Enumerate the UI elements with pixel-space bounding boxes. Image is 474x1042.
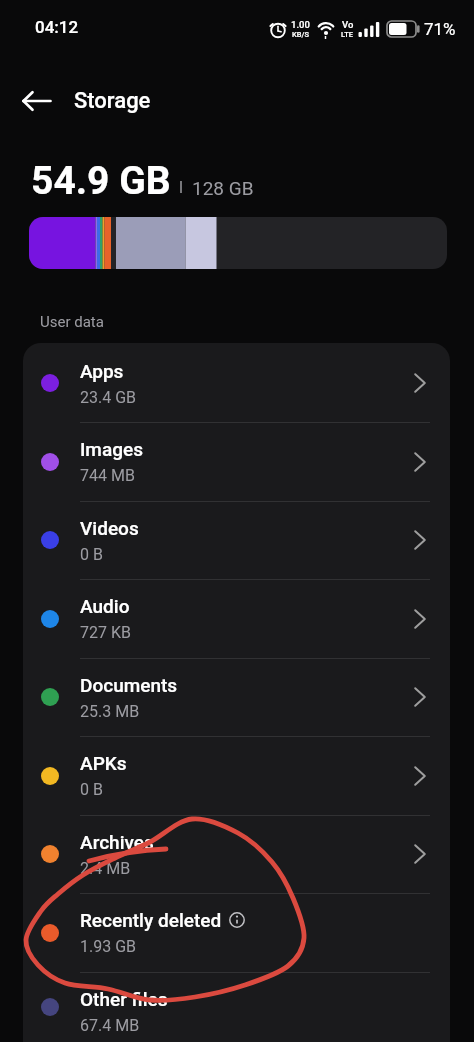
staticText: 71% [424,19,456,39]
staticText: 54.9 GB [31,158,171,204]
button[interactable]: APKs [23,736,450,815]
button[interactable]: Recently deleted [23,893,450,972]
button[interactable]: Audio [23,579,450,658]
button[interactable]: Apps [23,344,450,422]
staticText: Storage [74,88,151,114]
staticText: 744 MB [80,466,135,485]
staticText: KB/S [292,30,309,39]
staticText: 25.3 MB [80,702,140,721]
button[interactable]: Archives [23,815,450,893]
staticText: Vo [342,19,354,30]
staticText: Archives [80,831,154,853]
button[interactable]: Videos [23,501,450,579]
staticText: Apps [80,360,124,382]
staticText: 2.4 MB [80,859,131,878]
button[interactable] [14,78,60,124]
staticText: 727 KB [80,623,131,642]
staticText: 23.4 GB [80,388,137,407]
button[interactable]: Documents [23,658,450,736]
staticText: 67.4 MB [80,1016,140,1035]
staticText: Images [80,438,143,460]
button[interactable]: Other files [23,972,450,1042]
staticText: User data [40,313,104,331]
staticText: 1.00 [291,19,310,30]
staticText: Other files [80,988,168,1010]
staticText: 0 B [80,780,103,799]
staticText: 128 GB [192,177,254,199]
staticText: Audio [80,595,130,617]
staticText: Recently deleted [80,909,222,931]
staticText: Documents [80,674,178,696]
staticText: 04:12 [35,17,79,37]
staticText: 1.93 GB [80,937,137,956]
staticText: 0 B [80,545,103,564]
staticText: APKs [80,752,127,774]
staticText: LTE [341,30,354,39]
button[interactable]: Images [23,422,450,501]
staticText: Videos [80,517,139,539]
